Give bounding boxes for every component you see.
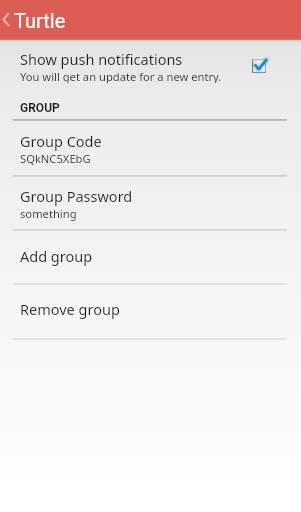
- staticText: Group Password: [20, 186, 133, 206]
- button[interactable]: Back: [0, 0, 14, 39]
- button[interactable]: Group Password: [0, 177, 301, 229]
- button[interactable]: Show push notifications: [0, 41, 301, 92]
- staticText: Remove group: [20, 299, 120, 319]
- staticText: something: [20, 206, 77, 221]
- staticText: You will get an update for a new entry.: [20, 69, 222, 83]
- button[interactable]: Group Code: [0, 121, 301, 175]
- staticText: Turtle: [14, 9, 66, 32]
- staticText: Group Code: [20, 131, 102, 151]
- button[interactable]: Remove group: [0, 285, 301, 338]
- staticText: SQkNC5XEbG: [20, 151, 91, 166]
- staticText: Add group: [20, 246, 93, 266]
- button[interactable]: Add group: [0, 231, 301, 283]
- staticText: Show push notifications: [20, 49, 183, 69]
- staticText: GROUP: [20, 101, 60, 115]
